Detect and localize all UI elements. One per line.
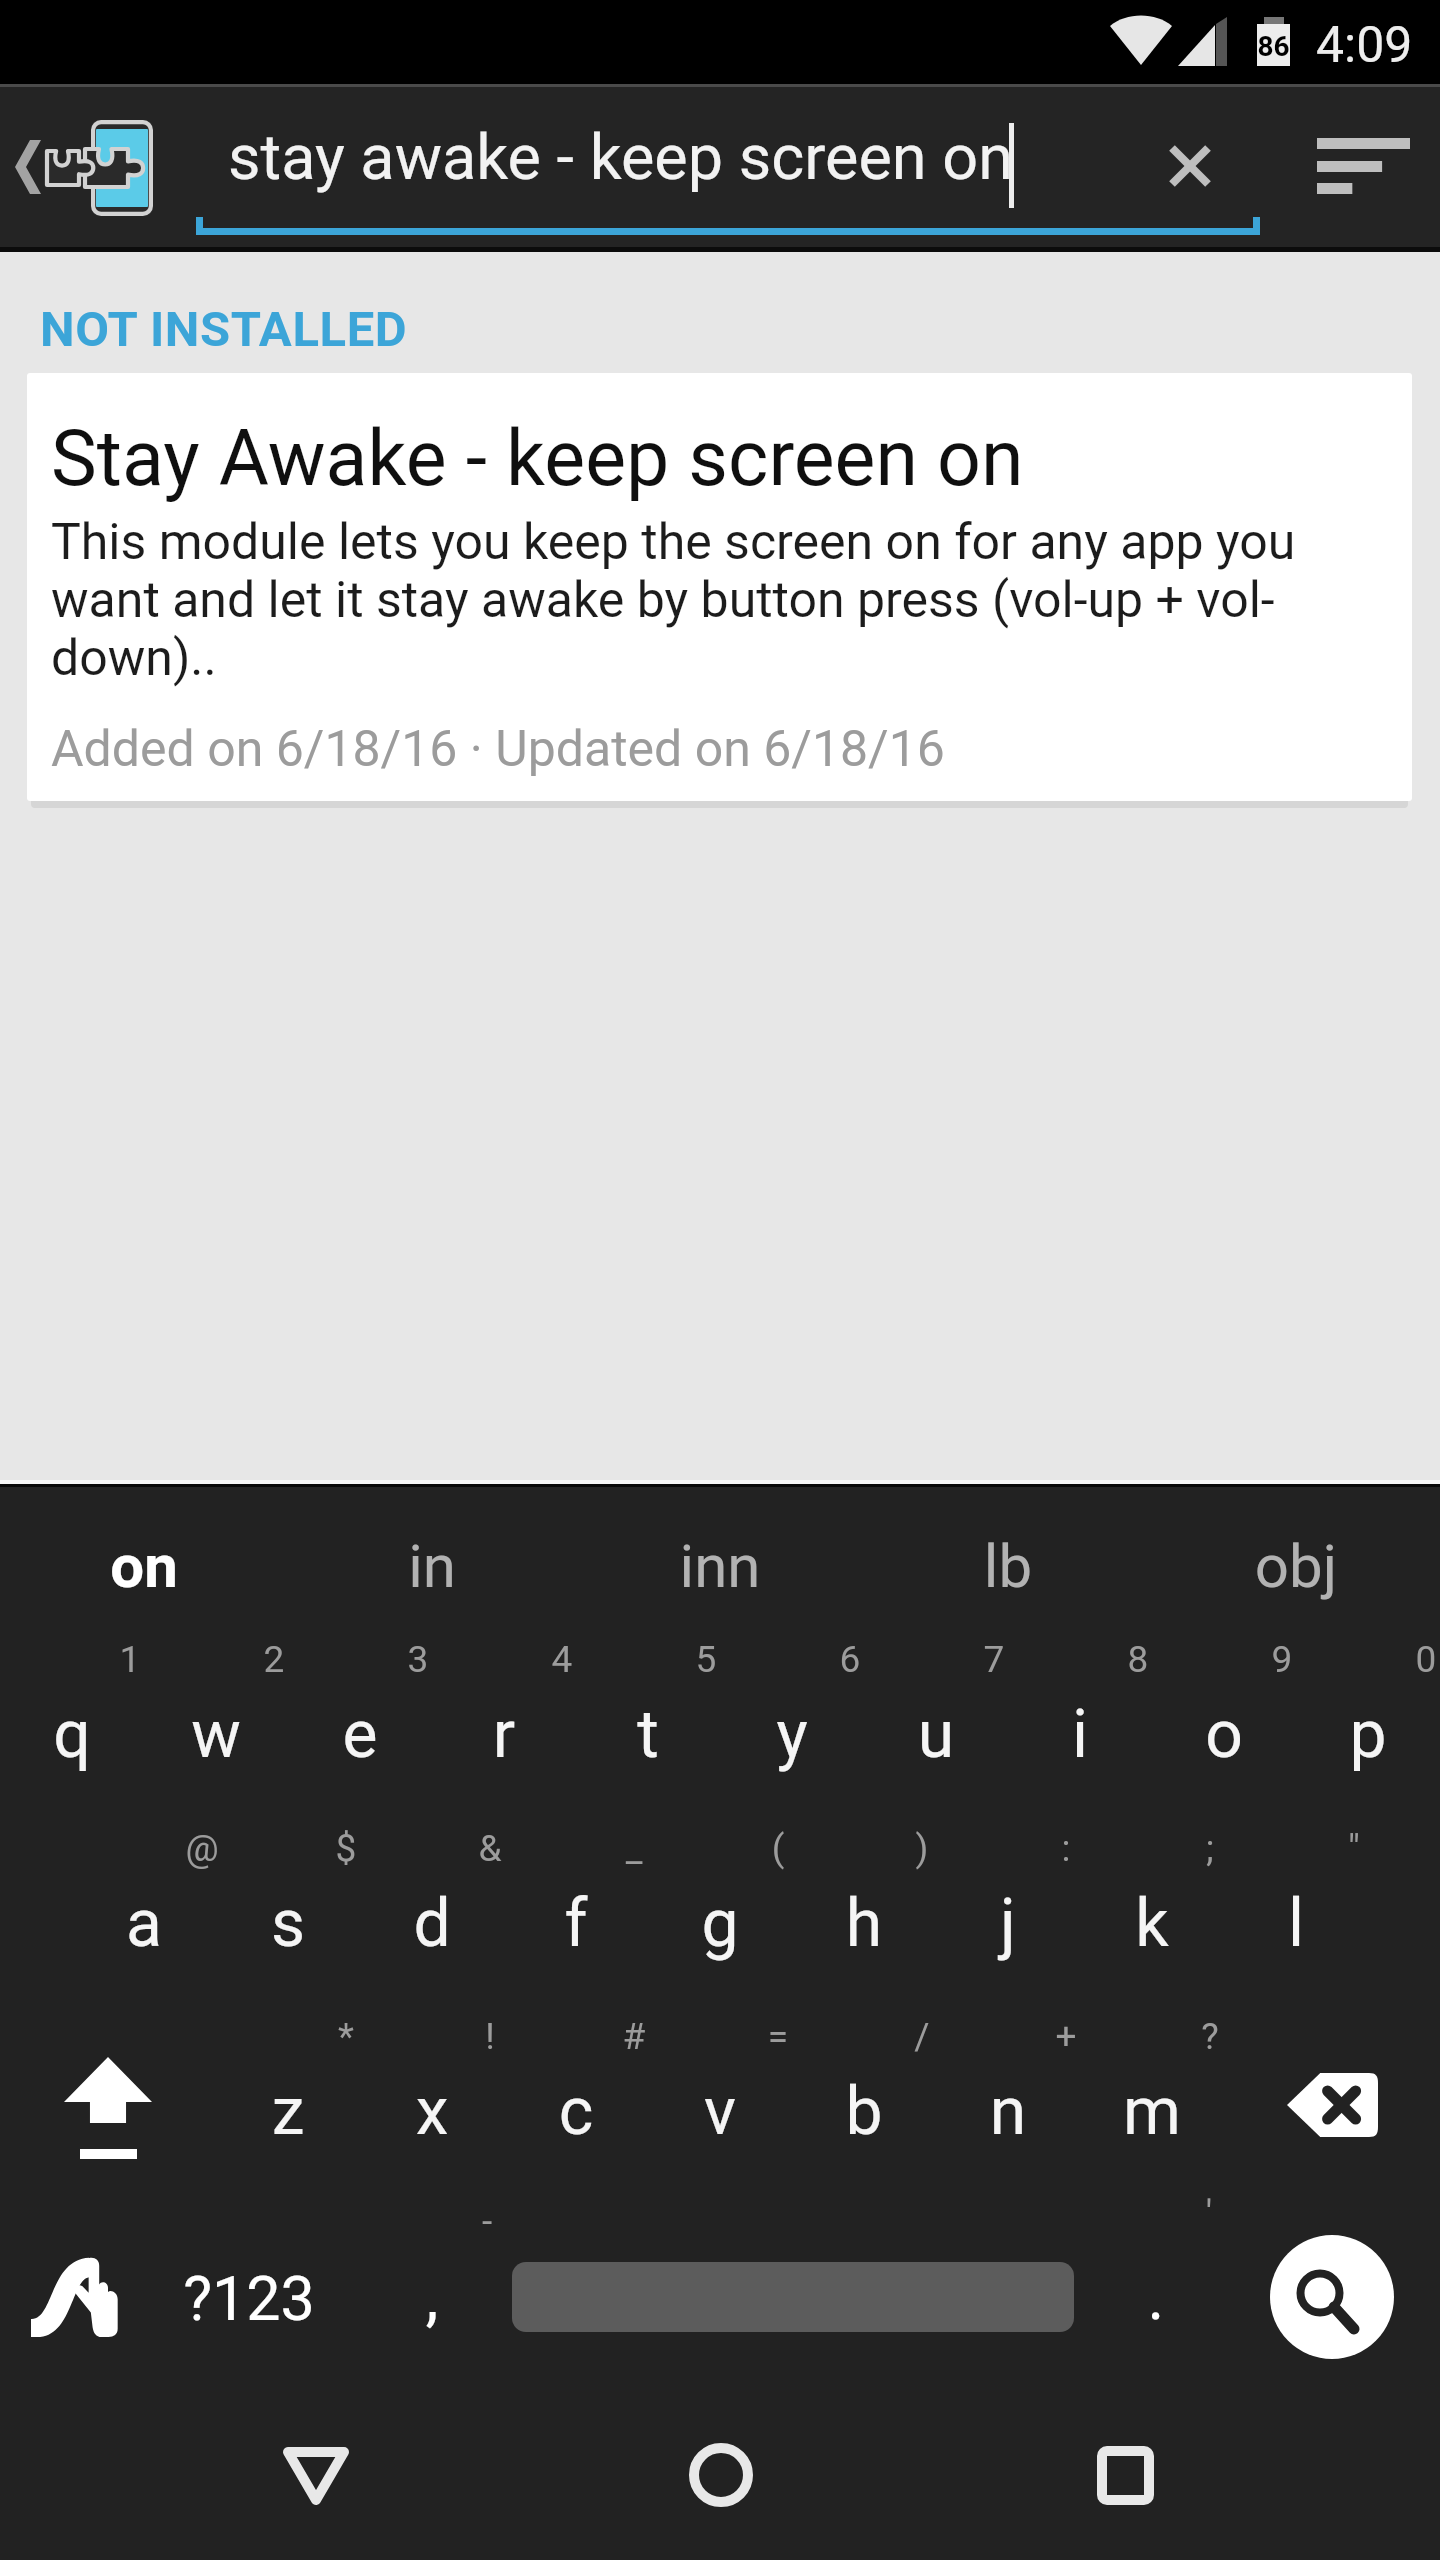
staticText: / bbox=[865, 2015, 979, 2058]
button[interactable]: = bbox=[648, 1994, 792, 2166]
button[interactable]: & bbox=[360, 1806, 504, 1978]
staticText: inn bbox=[576, 1531, 864, 1601]
button[interactable]: ' bbox=[1080, 2179, 1224, 2351]
staticText: y bbox=[720, 1696, 864, 1773]
staticText: i bbox=[1008, 1696, 1152, 1773]
staticText: 0 bbox=[1369, 1638, 1440, 1681]
staticText: 4 bbox=[505, 1638, 619, 1681]
button[interactable]: on bbox=[0, 1485, 288, 1617]
staticText: 6 bbox=[793, 1638, 907, 1681]
staticText: ) bbox=[865, 1827, 979, 1870]
button[interactable]: Home bbox=[649, 2400, 793, 2560]
button[interactable]: in bbox=[288, 1485, 576, 1617]
staticText: , bbox=[360, 2260, 504, 2335]
button[interactable]: Shift bbox=[0, 1994, 216, 2166]
staticText: 5 bbox=[649, 1638, 763, 1681]
button[interactable]: Clear query bbox=[1126, 102, 1254, 234]
button[interactable]: Gesture typing bbox=[0, 2179, 144, 2351]
button[interactable]: Space bbox=[504, 2179, 1080, 2351]
button[interactable]: Search query bbox=[196, 92, 1260, 242]
staticText: 4:09 bbox=[1316, 16, 1413, 75]
button[interactable]: - bbox=[360, 2179, 504, 2351]
staticText: w bbox=[144, 1696, 288, 1773]
button[interactable]: 2 bbox=[144, 1617, 288, 1789]
staticText: on bbox=[0, 1531, 288, 1601]
staticText: j bbox=[936, 1885, 1080, 1962]
button[interactable]: ?123 bbox=[144, 2179, 360, 2351]
staticText: x bbox=[360, 2073, 504, 2150]
button[interactable]: @ bbox=[72, 1806, 216, 1978]
staticText: 1 bbox=[73, 1638, 187, 1681]
staticText: NOT INSTALLED bbox=[40, 301, 408, 358]
button[interactable]: 5 bbox=[576, 1617, 720, 1789]
staticText: $ bbox=[289, 1827, 403, 1870]
button[interactable]: Search bbox=[1224, 2179, 1440, 2351]
staticText: k bbox=[1080, 1885, 1224, 1962]
button[interactable]: 3 bbox=[288, 1617, 432, 1789]
staticText: m bbox=[1080, 2073, 1224, 2150]
staticText: 86 bbox=[1257, 30, 1290, 63]
button[interactable]: 7 bbox=[864, 1617, 1008, 1789]
staticText: v bbox=[648, 2073, 792, 2150]
staticText: n bbox=[936, 2073, 1080, 2150]
button[interactable]: Backspace bbox=[1224, 1994, 1440, 2166]
button[interactable]: 9 bbox=[1152, 1617, 1296, 1789]
button[interactable]: + bbox=[936, 1994, 1080, 2166]
button[interactable]: obj bbox=[1152, 1485, 1440, 1617]
staticText: h bbox=[792, 1885, 936, 1962]
button[interactable]: Stay Awake - keep screen on bbox=[27, 373, 1412, 801]
button[interactable]: ) bbox=[792, 1806, 936, 1978]
button[interactable]: inn bbox=[576, 1485, 864, 1617]
staticText: = bbox=[721, 2015, 835, 2058]
staticText: _ bbox=[577, 1827, 691, 1870]
button[interactable]: : bbox=[936, 1806, 1080, 1978]
button[interactable]: Back bbox=[243, 2400, 387, 2560]
button[interactable]: $ bbox=[216, 1806, 360, 1978]
button[interactable]: 6 bbox=[720, 1617, 864, 1789]
staticText: z bbox=[216, 2073, 360, 2150]
staticText: l bbox=[1224, 1885, 1368, 1962]
staticText: This module lets you keep the screen on … bbox=[51, 513, 1371, 687]
staticText: stay awake - keep screen on bbox=[228, 121, 1013, 195]
staticText: ! bbox=[433, 2015, 547, 2058]
button[interactable]: ; bbox=[1080, 1806, 1224, 1978]
staticText: ?123 bbox=[141, 2263, 357, 2334]
staticText: Stay Awake - keep screen on bbox=[51, 414, 1024, 504]
staticText: c bbox=[504, 2073, 648, 2150]
button[interactable]: Recents bbox=[1053, 2400, 1197, 2560]
staticText: obj bbox=[1152, 1531, 1440, 1601]
button[interactable]: ( bbox=[648, 1806, 792, 1978]
staticText: ' bbox=[1150, 2192, 1268, 2235]
staticText: q bbox=[0, 1696, 144, 1773]
button[interactable]: _ bbox=[504, 1806, 648, 1978]
staticText: 2 bbox=[217, 1638, 331, 1681]
button[interactable]: " bbox=[1224, 1806, 1368, 1978]
staticText: . bbox=[1084, 2260, 1228, 2335]
staticText: d bbox=[360, 1885, 504, 1962]
staticText: 9 bbox=[1225, 1638, 1339, 1681]
staticText: b bbox=[792, 2073, 936, 2150]
staticText: 7 bbox=[937, 1638, 1051, 1681]
staticText: p bbox=[1296, 1696, 1440, 1773]
staticText: # bbox=[577, 2015, 691, 2058]
staticText: + bbox=[1009, 2015, 1123, 2058]
button[interactable]: 8 bbox=[1008, 1617, 1152, 1789]
button[interactable]: Navigate up bbox=[0, 84, 178, 252]
staticText: in bbox=[288, 1531, 576, 1601]
button[interactable]: 0 bbox=[1296, 1617, 1440, 1789]
button[interactable]: 4 bbox=[432, 1617, 576, 1789]
button[interactable]: lb bbox=[864, 1485, 1152, 1617]
staticText: o bbox=[1152, 1696, 1296, 1773]
staticText: s bbox=[216, 1885, 360, 1962]
button[interactable]: Sort bbox=[1270, 102, 1440, 234]
button[interactable]: 1 bbox=[0, 1617, 144, 1789]
button[interactable]: ? bbox=[1080, 1994, 1224, 2166]
staticText: ? bbox=[1153, 2015, 1267, 2058]
button[interactable]: # bbox=[504, 1994, 648, 2166]
staticText: * bbox=[289, 2015, 403, 2058]
button[interactable]: * bbox=[216, 1994, 360, 2166]
button[interactable]: / bbox=[792, 1994, 936, 2166]
staticText: g bbox=[648, 1885, 792, 1962]
button[interactable]: ! bbox=[360, 1994, 504, 2166]
staticText: a bbox=[72, 1885, 216, 1962]
